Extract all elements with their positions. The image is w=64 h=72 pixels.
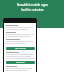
- staticText: Continue: [16, 61, 25, 64]
- button[interactable]: Continue: [6, 61, 35, 64]
- staticText: built in minutes: [21, 8, 44, 12]
- staticText: Beautiful mobile apps: [17, 3, 48, 7]
- button[interactable]: Get started: [6, 47, 35, 50]
- staticText: Get started: [15, 47, 26, 50]
